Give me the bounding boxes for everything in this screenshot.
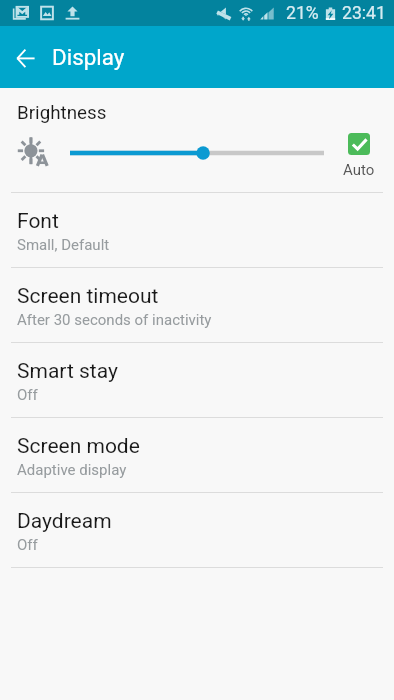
button[interactable]: Screen timeout	[0, 268, 394, 343]
button[interactable]: Screen mode	[0, 418, 394, 493]
button[interactable]: Smart stay	[0, 343, 394, 418]
staticText: Small, Default	[17, 236, 110, 254]
staticText: 23:41	[342, 3, 386, 24]
staticText: Font	[17, 209, 59, 234]
staticText: Daydream	[17, 509, 112, 534]
staticText: Auto	[343, 161, 375, 179]
staticText: Adaptive display	[17, 461, 127, 479]
button[interactable]: Navigate up	[6, 37, 46, 77]
staticText: Display	[52, 44, 125, 70]
button[interactable]	[62, 144, 332, 162]
button[interactable]: Font	[0, 193, 394, 268]
staticText: Screen mode	[17, 434, 140, 459]
staticText: Screen timeout	[17, 284, 159, 309]
staticText: Off	[17, 386, 38, 404]
staticText: 21%	[286, 3, 319, 24]
staticText: Brightness	[17, 102, 107, 124]
staticText: After 30 seconds of inactivity	[17, 311, 212, 329]
button[interactable]: Auto	[334, 133, 384, 179]
staticText: Off	[17, 536, 38, 554]
staticText: Smart stay	[17, 359, 118, 384]
button[interactable]: Daydream	[0, 493, 394, 568]
